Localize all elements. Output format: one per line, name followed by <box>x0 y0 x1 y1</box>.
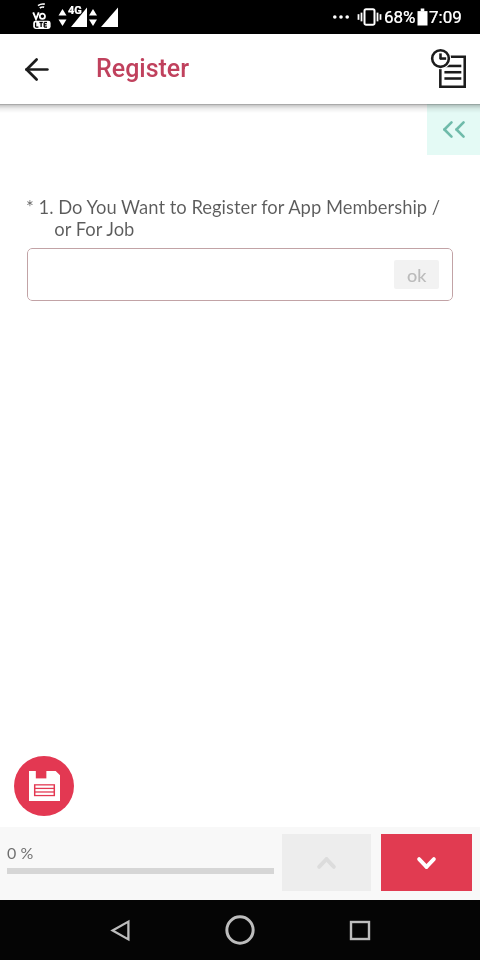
staticText: 0 % <box>7 843 34 862</box>
staticText: 7:09 <box>429 7 462 27</box>
button[interactable]: Pending forms <box>426 46 472 92</box>
staticText: ok <box>407 264 427 286</box>
button[interactable]: Collapse section <box>427 104 480 155</box>
button[interactable]: ok <box>27 248 453 301</box>
button[interactable]: Back <box>96 906 144 954</box>
button[interactable]: Home <box>216 906 264 954</box>
button[interactable]: ok <box>394 260 439 289</box>
staticText: 4G <box>68 4 82 17</box>
staticText: * 1. Do You Want to Register for App Mem… <box>26 196 441 240</box>
button[interactable]: Recent apps <box>336 906 384 954</box>
button[interactable]: Next question <box>381 834 472 891</box>
button[interactable]: Save <box>14 756 74 816</box>
staticText: 68% <box>384 7 416 27</box>
staticText: Register <box>96 54 190 83</box>
button[interactable]: Back <box>14 46 60 92</box>
